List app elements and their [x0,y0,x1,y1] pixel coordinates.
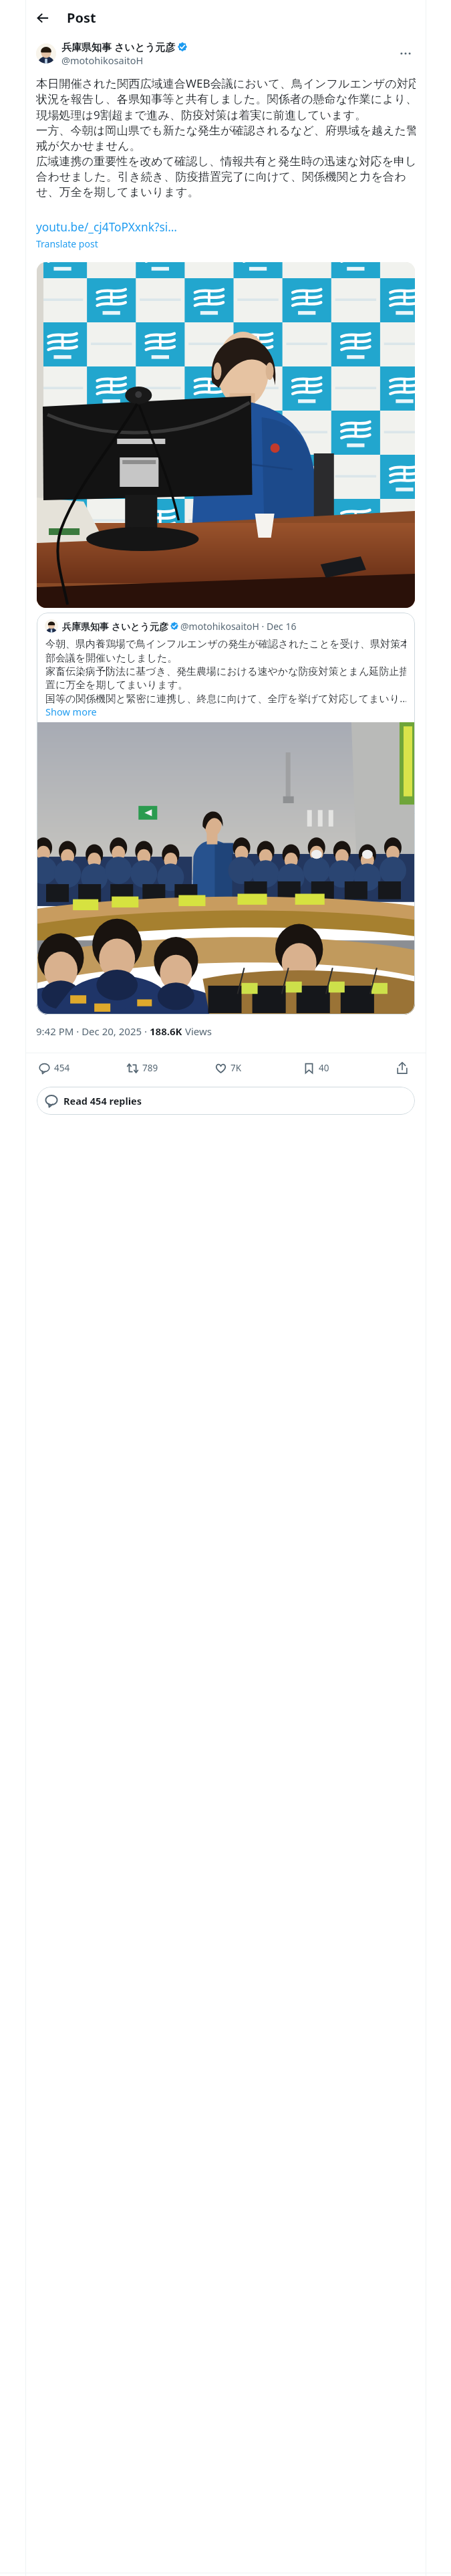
button[interactable]: Post image [37,262,415,608]
button[interactable]: Show more [45,705,97,718]
staticText: @motohikosaitoH · Dec 16 [180,620,297,633]
button[interactable]: 454 [39,1062,127,1074]
button[interactable]: More options [396,43,416,64]
staticText: Views [185,1025,212,1038]
staticText: Read 454 replies [63,1094,142,1107]
staticText: @motohikosaitoH [61,53,144,67]
button[interactable]: 7K [215,1062,303,1074]
button[interactable]: 789 [127,1062,215,1074]
staticText: 本日開催された関西広域連合WEB会議において、鳥インフルエンザの対応 状況を報告… [36,76,416,199]
button[interactable]: Translate post [36,237,98,250]
staticText: 今朝、県内養鶏場で鳥インフルエンザの発生が確認されたことを受け、県対策本 部会議… [45,638,406,705]
button[interactable]: 兵庫県知事 さいとう元彦 [37,613,415,1014]
button[interactable]: youtu.be/_cj4ToPXxnk?si… [36,219,177,235]
button[interactable]: Read 454 replies [37,1087,415,1115]
button[interactable]: Share [392,1057,413,1079]
staticText: 454 [54,1062,70,1074]
staticText: Post [67,9,96,27]
button[interactable]: Back [31,6,55,30]
staticText: 兵庫県知事 さいとう元彦 [62,620,168,633]
staticText: 9:42 PM · Dec 20, 2025 · [36,1025,150,1038]
staticText: 789 [142,1062,158,1074]
staticText: 40 [319,1062,329,1074]
staticText: 7K [231,1062,242,1074]
staticText: 兵庫県知事 さいとう元彦 [61,40,176,53]
button[interactable]: 40 [303,1062,392,1074]
staticText: 188.6K [150,1025,185,1038]
